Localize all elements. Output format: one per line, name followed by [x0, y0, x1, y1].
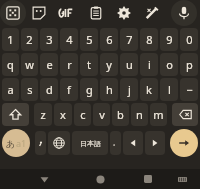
button[interactable]: Change language [48, 131, 70, 155]
staticText: 6 [106, 32, 113, 47]
button[interactable]: Stickers [26, 0, 52, 26]
button[interactable]: f [60, 78, 78, 101]
button[interactable]: 2 [21, 28, 38, 51]
button[interactable]: t [80, 53, 98, 76]
staticText: n [136, 107, 143, 122]
staticText: e [46, 57, 53, 72]
button[interactable]: x [54, 103, 72, 126]
button[interactable]: Enter [170, 129, 198, 157]
staticText: x [60, 107, 66, 122]
button[interactable]: m [150, 103, 167, 126]
staticText: 7 [126, 32, 133, 47]
button[interactable]: h [100, 78, 118, 101]
button[interactable]: j [120, 78, 138, 101]
button[interactable]: Home [90, 169, 110, 189]
button[interactable]: 4 [60, 28, 78, 51]
staticText: a [7, 82, 14, 97]
button[interactable]: n [131, 103, 148, 126]
staticText: − [186, 82, 193, 97]
button[interactable]: i [140, 53, 158, 76]
button[interactable]: s [21, 78, 38, 101]
staticText: w [25, 57, 34, 72]
staticText: 3 [46, 32, 53, 47]
button[interactable]: r [60, 53, 78, 76]
button[interactable]: d [40, 78, 58, 101]
button[interactable]: GIF [53, 0, 79, 26]
staticText: 日本語 [80, 139, 101, 148]
button[interactable]: Switch keyboard [172, 169, 192, 189]
staticText: k [146, 82, 152, 97]
button[interactable]: Backspace [172, 103, 198, 126]
staticText: 8 [146, 32, 153, 47]
button[interactable]: k [140, 78, 158, 101]
staticText: 4 [66, 32, 73, 47]
button[interactable]: − [180, 78, 198, 101]
button[interactable]: q [2, 53, 19, 76]
staticText: 。 [113, 139, 119, 147]
staticText: s [27, 82, 33, 97]
button[interactable]: l [160, 78, 178, 101]
staticText: t [87, 57, 91, 72]
staticText: d [46, 82, 53, 97]
button[interactable]: Switch input mode [2, 129, 30, 157]
button[interactable]: Shift [2, 103, 29, 126]
staticText: m [153, 107, 164, 122]
staticText: 9 [166, 32, 173, 47]
button[interactable]: 日本語 [72, 131, 108, 155]
button[interactable]: o [160, 53, 178, 76]
button[interactable]: y [100, 53, 118, 76]
button[interactable]: 5 [80, 28, 98, 51]
button[interactable]: 1 [2, 28, 19, 51]
staticText: g [86, 82, 93, 97]
button[interactable]: Move cursor right [145, 131, 165, 155]
button[interactable]: 9 [160, 28, 178, 51]
button[interactable]: c [74, 103, 91, 126]
staticText: a1 [16, 137, 27, 149]
staticText: 2 [26, 32, 33, 47]
button[interactable]: Recent apps [138, 169, 158, 189]
button[interactable]: 。 [110, 131, 121, 155]
button[interactable]: 0 [180, 28, 198, 51]
button[interactable]: Keyboard options [0, 0, 26, 26]
staticText: 0 [186, 32, 193, 47]
button[interactable]: Clipboard [83, 0, 109, 26]
button[interactable]: u [120, 53, 138, 76]
button[interactable]: 6 [100, 28, 118, 51]
button[interactable]: z [34, 103, 52, 126]
staticText: i [148, 57, 151, 72]
button[interactable]: a [2, 78, 19, 101]
staticText: j [128, 82, 131, 97]
staticText: 5 [86, 32, 93, 47]
staticText: r [67, 57, 72, 72]
staticText: b [117, 107, 124, 122]
button[interactable]: 3 [40, 28, 58, 51]
staticText: y [106, 57, 112, 72]
staticText: o [166, 57, 173, 72]
button[interactable]: Hide keyboard [34, 169, 54, 189]
button[interactable]: Handwriting [139, 0, 165, 26]
button[interactable]: 8 [140, 28, 158, 51]
button[interactable]: v [93, 103, 110, 126]
button[interactable]: w [21, 53, 38, 76]
staticText: u [126, 57, 133, 72]
button[interactable] [35, 131, 46, 155]
button[interactable]: Move cursor left [123, 131, 143, 155]
staticText: z [40, 107, 46, 122]
button[interactable]: Voice input [171, 0, 197, 26]
staticText: c [80, 107, 86, 122]
button[interactable]: b [112, 103, 129, 126]
button[interactable]: p [180, 53, 198, 76]
staticText: f [67, 82, 71, 97]
button[interactable]: Settings [111, 0, 137, 26]
button[interactable]: g [80, 78, 98, 101]
staticText: q [7, 57, 14, 72]
staticText: v [99, 107, 105, 122]
staticText: l [168, 82, 171, 97]
staticText: あ [6, 138, 16, 149]
staticText: p [186, 57, 193, 72]
staticText: 1 [7, 32, 14, 47]
staticText: h [106, 82, 113, 97]
button[interactable]: e [40, 53, 58, 76]
button[interactable]: 7 [120, 28, 138, 51]
